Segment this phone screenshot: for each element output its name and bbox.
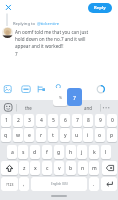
staticText: i xyxy=(87,132,89,139)
staticText: o xyxy=(98,132,102,139)
staticText: c xyxy=(46,165,49,172)
button[interactable]: 6 xyxy=(60,114,70,127)
staticText: 7 xyxy=(15,51,18,57)
button[interactable]: t xyxy=(48,128,58,142)
staticText: m xyxy=(92,165,97,172)
button[interactable]: c xyxy=(42,161,52,175)
staticText: @tickentire xyxy=(37,21,60,27)
button[interactable]: 5 xyxy=(48,114,58,127)
button[interactable]: 9 xyxy=(95,114,105,127)
staticText: appear and it worked!! xyxy=(15,43,64,49)
staticText: % xyxy=(59,95,62,100)
staticText: y xyxy=(64,132,67,139)
staticText: a xyxy=(11,149,14,156)
button[interactable]: r xyxy=(36,128,46,142)
button[interactable] xyxy=(1,161,18,175)
button[interactable]: z xyxy=(19,161,29,175)
button[interactable]: 2 xyxy=(13,114,23,127)
button[interactable]: s xyxy=(18,145,28,159)
button[interactable]: l xyxy=(101,145,111,159)
staticText: 5 xyxy=(52,117,55,124)
staticText: x xyxy=(34,165,37,172)
button[interactable] xyxy=(102,161,117,175)
button[interactable]: m xyxy=(89,161,99,175)
staticText: . xyxy=(93,181,95,188)
button[interactable]: 7 xyxy=(67,88,82,106)
staticText: 9 xyxy=(99,117,102,124)
staticText: 2 xyxy=(17,117,20,124)
button[interactable]: q xyxy=(1,128,11,142)
button[interactable]: 3 xyxy=(24,114,34,127)
button[interactable]: v xyxy=(54,161,64,175)
staticText: the xyxy=(25,105,32,111)
button[interactable]: 1 xyxy=(1,114,11,127)
button[interactable]: n xyxy=(78,161,88,175)
staticText: w xyxy=(16,132,21,139)
button[interactable]: 8 xyxy=(83,114,93,127)
staticText: ?123 xyxy=(6,182,14,187)
staticText: r xyxy=(40,132,43,139)
staticText: j xyxy=(81,149,83,156)
button[interactable]: g xyxy=(54,145,64,159)
staticText: 4 xyxy=(40,117,43,124)
button[interactable]: ?123 xyxy=(1,177,18,191)
button[interactable]: j xyxy=(77,145,87,159)
staticText: , xyxy=(23,181,25,188)
staticText: and xyxy=(84,105,92,111)
staticText: 6 xyxy=(64,117,67,124)
staticText: p xyxy=(110,132,114,139)
button[interactable]: p xyxy=(107,128,117,142)
button[interactable]: English (US) xyxy=(31,177,87,191)
staticText: s xyxy=(22,149,25,156)
button[interactable]: i xyxy=(83,128,93,142)
staticText: Reply xyxy=(94,5,106,11)
button[interactable]: w xyxy=(13,128,23,142)
staticText: hold down on the no.7 and it will xyxy=(15,36,86,42)
button[interactable]: y xyxy=(60,128,70,142)
staticText: z xyxy=(23,165,26,172)
button[interactable] xyxy=(101,177,117,191)
staticText: 8 xyxy=(87,117,90,124)
staticText: 7 xyxy=(73,94,76,101)
staticText: n xyxy=(81,165,85,172)
staticText: English (US) xyxy=(51,182,68,186)
staticText: l xyxy=(105,149,107,156)
staticText: An oomf told me that you can just xyxy=(15,29,89,35)
staticText: e xyxy=(28,132,31,139)
button[interactable]: h xyxy=(66,145,76,159)
button[interactable]: Reply xyxy=(88,3,112,13)
staticText: Replying to xyxy=(13,21,37,27)
button[interactable]: 0 xyxy=(107,114,117,127)
button[interactable]: d xyxy=(30,145,40,159)
button[interactable]: . xyxy=(89,177,99,191)
staticText: 0 xyxy=(111,117,114,124)
button[interactable]: k xyxy=(89,145,99,159)
staticText: g xyxy=(57,149,61,156)
button[interactable]: o xyxy=(95,128,105,142)
button[interactable]: e xyxy=(24,128,34,142)
button[interactable]: 4 xyxy=(36,114,46,127)
button[interactable]: u xyxy=(72,128,82,142)
button[interactable]: b xyxy=(66,161,76,175)
button[interactable]: 7 xyxy=(72,114,82,127)
staticText: b xyxy=(69,165,73,172)
staticText: 1 xyxy=(5,117,8,124)
button[interactable]: , xyxy=(19,177,29,191)
staticText: q xyxy=(4,132,8,139)
staticText: d xyxy=(33,149,37,156)
button[interactable]: f xyxy=(42,145,52,159)
staticText: t xyxy=(52,132,54,139)
staticText: v xyxy=(58,165,61,172)
staticText: k xyxy=(93,149,96,156)
button[interactable]: a xyxy=(7,145,17,159)
staticText: 3 xyxy=(28,117,31,124)
button[interactable]: x xyxy=(30,161,40,175)
staticText: 7 xyxy=(76,117,79,124)
staticText: h xyxy=(69,149,73,156)
staticText: u xyxy=(75,132,79,139)
staticText: f xyxy=(46,149,48,156)
